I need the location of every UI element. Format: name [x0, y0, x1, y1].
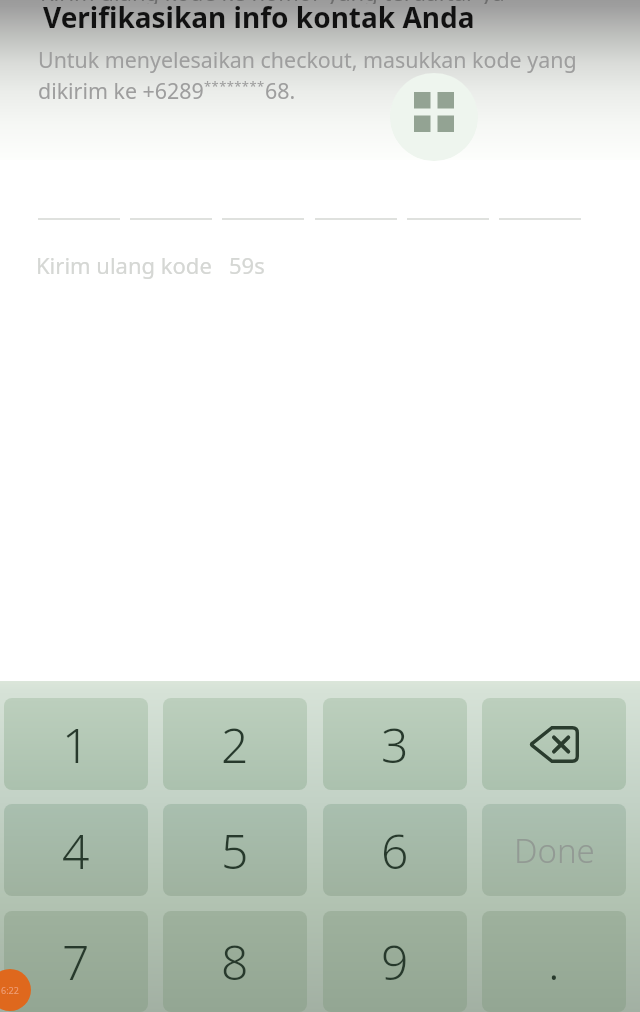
staticText: 8	[221, 929, 249, 994]
button[interactable]: 7	[4, 911, 148, 1012]
staticText: Kirim ulang kode ke nomor yang terdaftar…	[40, 0, 505, 4]
staticText: 7	[62, 929, 90, 994]
staticText: 1	[62, 712, 90, 777]
button[interactable]: .	[482, 911, 626, 1012]
button[interactable]: Show keypad	[390, 73, 478, 161]
button[interactable]: Kirim ulang kode	[36, 250, 265, 280]
staticText: Verifikasikan info kontak Anda	[43, 0, 475, 36]
button[interactable]: 8	[163, 911, 307, 1012]
button[interactable]: 5	[163, 804, 307, 896]
button[interactable]: 4	[4, 804, 148, 896]
button[interactable]: 6	[323, 804, 467, 896]
button[interactable]: Backspace	[482, 698, 626, 790]
staticText: 4	[62, 818, 90, 883]
staticText: 2	[221, 712, 249, 777]
button[interactable]: 2	[163, 698, 307, 790]
staticText: ********	[204, 77, 265, 95]
button[interactable]: 9	[323, 911, 467, 1012]
staticText: Done	[514, 828, 595, 873]
staticText: 6:22	[1, 984, 19, 996]
button[interactable]: Done	[482, 804, 626, 896]
staticText: 6	[381, 818, 409, 883]
button[interactable]: 3	[323, 698, 467, 790]
staticText: 9	[381, 929, 409, 994]
button[interactable]: 1	[4, 698, 148, 790]
staticText: 68.	[265, 76, 296, 105]
staticText: .	[548, 929, 560, 994]
staticText: 5	[221, 818, 249, 883]
staticText: 3	[381, 712, 409, 777]
staticText: Kirim ulang kode 59s	[36, 250, 265, 280]
staticText: dikirim ke +6289	[38, 76, 204, 105]
staticText: Untuk menyelesaikan checkout, masukkan k…	[38, 45, 577, 74]
